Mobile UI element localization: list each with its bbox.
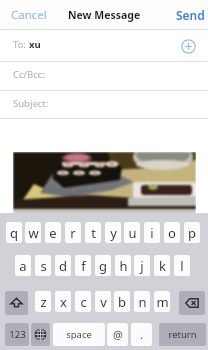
button[interactable]: a — [15, 255, 31, 276]
button[interactable]: Cancel — [9, 3, 49, 27]
staticText: y — [110, 224, 117, 242]
staticText: To: — [13, 38, 26, 51]
button[interactable]: e — [45, 222, 61, 243]
button[interactable]: d — [55, 255, 71, 276]
button[interactable]: f — [75, 255, 91, 276]
button[interactable]: c — [75, 291, 91, 312]
staticText: Cc/Bcc: — [13, 68, 45, 81]
button[interactable]: m — [154, 291, 170, 312]
staticText: c — [80, 293, 87, 311]
button[interactable]: o — [164, 222, 180, 243]
button[interactable]: Cc/Bcc: — [0, 62, 208, 91]
button[interactable]: 123 — [5, 323, 29, 346]
staticText: a — [19, 257, 27, 275]
staticText: . — [140, 327, 143, 342]
button[interactable]: l — [174, 255, 190, 276]
staticText: j — [140, 257, 144, 275]
button[interactable]: return — [159, 323, 206, 346]
button[interactable]: k — [154, 255, 170, 276]
staticText: k — [159, 257, 166, 275]
staticText: xu — [29, 38, 41, 51]
button[interactable]: i — [144, 222, 160, 243]
button[interactable]: s — [35, 255, 51, 276]
button[interactable]: z — [35, 291, 51, 312]
staticText: return — [168, 328, 197, 341]
button[interactable]: . — [131, 323, 152, 346]
button[interactable]: u — [124, 222, 140, 243]
button[interactable]: j — [134, 255, 150, 276]
staticText: x — [60, 293, 67, 311]
staticText: o — [168, 224, 176, 242]
staticText: Send — [176, 7, 205, 23]
staticText: v — [100, 293, 107, 311]
staticText: Subject: — [13, 97, 49, 110]
staticText: s — [40, 257, 47, 275]
staticText: u — [128, 224, 137, 242]
button[interactable]: q — [6, 222, 22, 243]
button[interactable]: r — [65, 222, 81, 243]
staticText: q — [10, 224, 18, 242]
staticText: p — [188, 224, 196, 242]
button[interactable]: Shift — [5, 291, 28, 315]
button[interactable]: Add contact — [181, 39, 196, 54]
staticText: e — [49, 224, 57, 242]
button[interactable]: Delete — [179, 291, 205, 315]
button[interactable]: space — [53, 323, 105, 346]
button[interactable]: t — [85, 222, 101, 243]
staticText: space — [66, 328, 92, 341]
button[interactable]: Switch keyboard — [31, 323, 50, 346]
staticText: @ — [113, 327, 123, 342]
button[interactable]: b — [114, 291, 130, 312]
staticText: Cancel — [11, 7, 47, 23]
button[interactable]: Subject: — [0, 91, 208, 119]
staticText: New Message — [68, 8, 141, 22]
button[interactable]: h — [115, 255, 131, 276]
button[interactable]: To: — [0, 30, 208, 62]
staticText: z — [40, 293, 47, 311]
button[interactable]: x — [55, 291, 71, 312]
staticText: r — [70, 224, 76, 242]
staticText: 123 — [9, 328, 26, 341]
button[interactable]: @ — [107, 323, 128, 346]
button[interactable]: n — [134, 291, 150, 312]
staticText: m — [156, 293, 169, 311]
button[interactable]: v — [95, 291, 111, 312]
button[interactable]: Send — [174, 3, 207, 27]
staticText: n — [138, 293, 147, 311]
button[interactable]: y — [105, 222, 121, 243]
button[interactable]: g — [95, 255, 111, 276]
staticText: w — [28, 224, 39, 242]
staticText: g — [99, 257, 107, 275]
staticText: i — [150, 224, 154, 242]
staticText: t — [91, 224, 96, 242]
button[interactable]: w — [25, 222, 41, 243]
button[interactable]: p — [184, 222, 200, 243]
staticText: l — [180, 257, 184, 275]
staticText: d — [59, 257, 67, 275]
staticText: b — [118, 293, 126, 311]
staticText: h — [119, 257, 128, 275]
staticText: f — [81, 257, 86, 275]
